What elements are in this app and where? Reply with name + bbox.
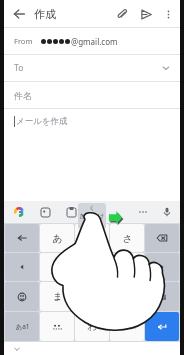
staticText: @gmail.com <box>71 36 118 47</box>
staticText: 、。?! <box>118 322 136 331</box>
staticText: メールを作成 <box>16 116 68 127</box>
staticText: か <box>87 210 98 223</box>
button[interactable]: Attach file <box>112 4 132 24</box>
button[interactable]: EMOJI <box>5 282 39 311</box>
button[interactable]: あa1 <box>5 312 39 341</box>
staticText: From <box>14 36 33 46</box>
button[interactable]: か <box>75 224 109 252</box>
staticText: く <box>89 204 96 212</box>
button[interactable]: メールを作成 <box>4 109 180 133</box>
staticText: 作成 <box>34 7 56 21</box>
button[interactable]: Voice input <box>158 203 176 221</box>
button[interactable]: さ <box>110 224 144 252</box>
button[interactable]: DAKUTEN <box>40 312 74 341</box>
button[interactable]: あ <box>40 224 74 252</box>
button[interactable]: 、。?! <box>110 312 144 341</box>
button[interactable]: た <box>40 253 74 281</box>
staticText: To <box>14 62 24 74</box>
button[interactable]: Stickers <box>36 203 54 221</box>
button[interactable]: SPACE <box>145 282 179 311</box>
button[interactable]: Send <box>136 4 156 24</box>
button[interactable]: わ <box>75 312 109 341</box>
button[interactable]: Hide keyboard <box>12 344 22 354</box>
button[interactable]: More options <box>158 4 178 24</box>
staticText: あ <box>52 232 63 245</box>
button[interactable]: は <box>110 253 144 281</box>
staticText: ま <box>52 290 63 303</box>
button[interactable]: Google <box>10 203 28 221</box>
staticText: き <box>79 212 86 220</box>
staticText: さ <box>122 232 133 245</box>
button[interactable]: LEFT <box>5 253 39 281</box>
staticText: た <box>52 261 63 274</box>
button[interactable]: 件名 <box>4 82 180 108</box>
staticText: 件名 <box>14 90 32 101</box>
button[interactable]: RIGHT <box>145 253 179 281</box>
staticText: け <box>98 212 105 220</box>
button[interactable]: ENTER <box>145 312 179 341</box>
button[interactable]: UNDO <box>5 224 39 252</box>
button[interactable]: Back <box>8 3 30 25</box>
button[interactable]: Clipboard <box>62 203 80 221</box>
button[interactable]: To <box>4 55 180 81</box>
button[interactable]: More <box>134 203 152 221</box>
button[interactable]: BACKSPACE <box>145 224 179 252</box>
button[interactable]: From <box>4 28 180 54</box>
staticText: あa1 <box>15 322 30 331</box>
staticText: わ <box>87 320 98 333</box>
button[interactable]: ま <box>40 282 74 311</box>
